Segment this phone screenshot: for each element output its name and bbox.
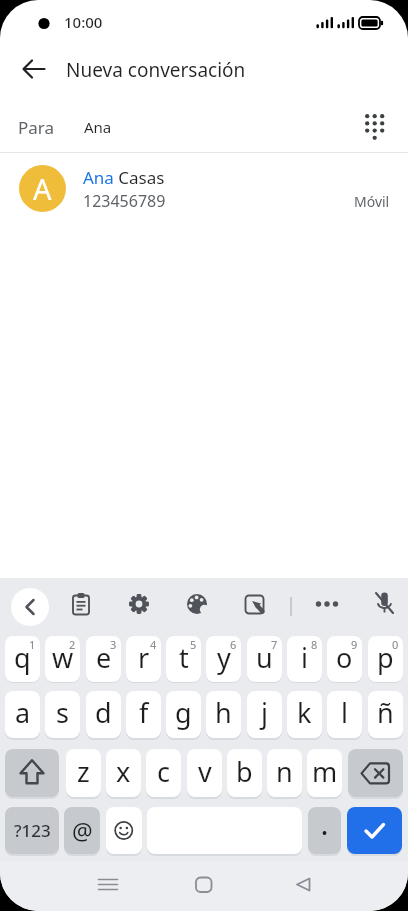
staticText: g xyxy=(175,694,192,731)
button[interactable] xyxy=(364,584,404,624)
button[interactable]: @ xyxy=(64,807,100,854)
staticText: q xyxy=(14,639,31,676)
staticText: b xyxy=(236,753,253,790)
button[interactable] xyxy=(235,584,275,624)
staticText: j xyxy=(261,694,268,731)
staticText: f xyxy=(139,694,149,731)
button[interactable]: x xyxy=(106,749,141,797)
staticText: s xyxy=(56,694,69,731)
staticText: r xyxy=(138,639,150,676)
button[interactable]: j xyxy=(247,691,282,738)
button[interactable] xyxy=(307,584,347,624)
staticText: w xyxy=(52,639,74,676)
button[interactable] xyxy=(88,864,128,904)
button[interactable]: z xyxy=(66,749,101,797)
staticText: d xyxy=(95,694,112,731)
staticText: p xyxy=(377,639,394,676)
staticText: 0 xyxy=(392,637,399,652)
staticText: Nueva conversación xyxy=(66,57,246,83)
button[interactable]: v xyxy=(187,749,222,797)
button[interactable] xyxy=(106,807,142,854)
button[interactable]: u xyxy=(247,636,282,682)
staticText: 5 xyxy=(190,637,197,652)
button[interactable] xyxy=(119,584,159,624)
button[interactable]: q xyxy=(5,636,40,682)
button[interactable] xyxy=(61,584,101,624)
staticText: Ana Casas xyxy=(83,166,165,189)
staticText: k xyxy=(297,694,312,731)
button[interactable]: r xyxy=(126,636,161,682)
staticText: 8 xyxy=(311,637,318,652)
staticText: c xyxy=(157,753,170,790)
button[interactable]: t xyxy=(166,636,201,682)
staticText: t xyxy=(179,639,189,676)
staticText: 10:00 xyxy=(64,12,103,32)
button[interactable]: A xyxy=(0,153,408,224)
button[interactable] xyxy=(11,588,49,626)
button[interactable]: f xyxy=(126,691,161,738)
button[interactable]: o xyxy=(327,636,362,682)
button[interactable] xyxy=(177,584,217,624)
button[interactable]: s xyxy=(45,691,80,738)
staticText: z xyxy=(77,753,90,790)
button[interactable]: a xyxy=(5,691,40,738)
staticText: h xyxy=(215,694,232,731)
button[interactable] xyxy=(353,105,396,148)
button[interactable] xyxy=(348,749,403,797)
staticText: m xyxy=(312,753,338,790)
button[interactable] xyxy=(347,807,402,854)
staticText: 2 xyxy=(69,637,76,652)
staticText: 123456789 xyxy=(83,190,166,212)
button[interactable]: e xyxy=(86,636,121,682)
button[interactable]: c xyxy=(146,749,181,797)
staticText: 4 xyxy=(150,637,157,652)
button[interactable]: d xyxy=(86,691,121,738)
button[interactable] xyxy=(282,864,322,904)
button[interactable]: i xyxy=(287,636,322,682)
staticText: n xyxy=(276,753,293,790)
staticText: Para xyxy=(18,116,55,139)
staticText: ?123 xyxy=(14,819,51,842)
button[interactable]: l xyxy=(327,691,362,738)
staticText: o xyxy=(336,639,353,676)
staticText: ñ xyxy=(377,694,394,731)
staticText: u xyxy=(256,639,273,676)
staticText: @ xyxy=(72,815,93,846)
staticText: 6 xyxy=(230,637,237,652)
button[interactable]: b xyxy=(227,749,262,797)
staticText: Móvil xyxy=(354,192,390,211)
button[interactable]: ñ xyxy=(368,691,403,738)
staticText: x xyxy=(116,753,131,790)
staticText: e xyxy=(96,639,112,676)
button[interactable] xyxy=(5,749,59,797)
staticText: 3 xyxy=(110,637,117,652)
button[interactable]: p xyxy=(368,636,403,682)
button[interactable] xyxy=(184,864,224,904)
staticText: 7 xyxy=(271,637,278,652)
staticText: 1 xyxy=(29,637,36,652)
staticText: Ana xyxy=(84,117,112,137)
button[interactable]: g xyxy=(166,691,201,738)
button[interactable]: k xyxy=(287,691,322,738)
staticText: a xyxy=(15,694,31,731)
button[interactable] xyxy=(14,49,54,89)
button[interactable]: m xyxy=(307,749,342,797)
staticText: A xyxy=(33,169,52,208)
button[interactable]: y xyxy=(206,636,241,682)
staticText: v xyxy=(198,753,212,790)
button[interactable]: w xyxy=(45,636,80,682)
staticText: 9 xyxy=(351,637,358,652)
staticText: l xyxy=(341,694,348,731)
staticText: y xyxy=(217,639,231,676)
button[interactable]: ?123 xyxy=(5,807,59,854)
staticText: i xyxy=(301,639,308,676)
button[interactable] xyxy=(308,807,341,854)
button[interactable]: h xyxy=(206,691,241,738)
button[interactable]: n xyxy=(267,749,302,797)
